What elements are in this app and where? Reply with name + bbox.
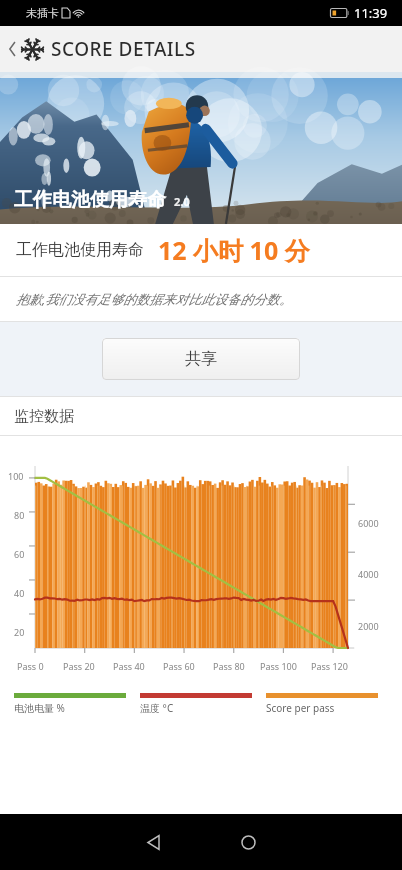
staticText: 100 (8, 470, 24, 482)
staticText: Pass 0 (17, 660, 44, 672)
staticText: Pass 60 (163, 660, 195, 672)
staticText: Pass 100 (260, 660, 297, 672)
staticText: SCORE DETAILS (51, 36, 196, 62)
staticText: 20 (14, 626, 25, 638)
staticText: 12 小时 10 分 (158, 233, 310, 267)
button[interactable]: 共享 (102, 338, 300, 380)
staticText: 40 (14, 587, 25, 599)
staticText: 电池电量 % (14, 701, 65, 715)
staticText: 温度 °C (140, 701, 174, 715)
staticText: Pass 20 (63, 660, 95, 672)
button[interactable]: Home (224, 818, 272, 866)
staticText: 60 (14, 548, 25, 560)
staticText: 共享 (185, 349, 217, 369)
staticText: Pass 120 (311, 660, 348, 672)
button[interactable]: Back (130, 818, 178, 866)
staticText: 2.0 (174, 194, 190, 209)
staticText: 工作电池使用寿命 (14, 188, 166, 212)
staticText: Score per pass (266, 701, 335, 715)
staticText: 未插卡 (26, 6, 59, 20)
staticText: 80 (14, 509, 25, 521)
staticText: 2000 (358, 620, 379, 632)
staticText: Pass 40 (113, 660, 145, 672)
staticText: Pass 80 (213, 660, 245, 672)
staticText: 监控数据 (14, 407, 74, 426)
staticText: 11:39 (354, 4, 388, 22)
staticText: 4000 (358, 568, 379, 580)
button[interactable]: Back (3, 32, 21, 66)
staticText: 6000 (358, 517, 379, 529)
staticText: 抱歉,我们没有足够的数据来对比此设备的分数。 (16, 290, 293, 308)
staticText: 工作电池使用寿命 (16, 240, 144, 260)
